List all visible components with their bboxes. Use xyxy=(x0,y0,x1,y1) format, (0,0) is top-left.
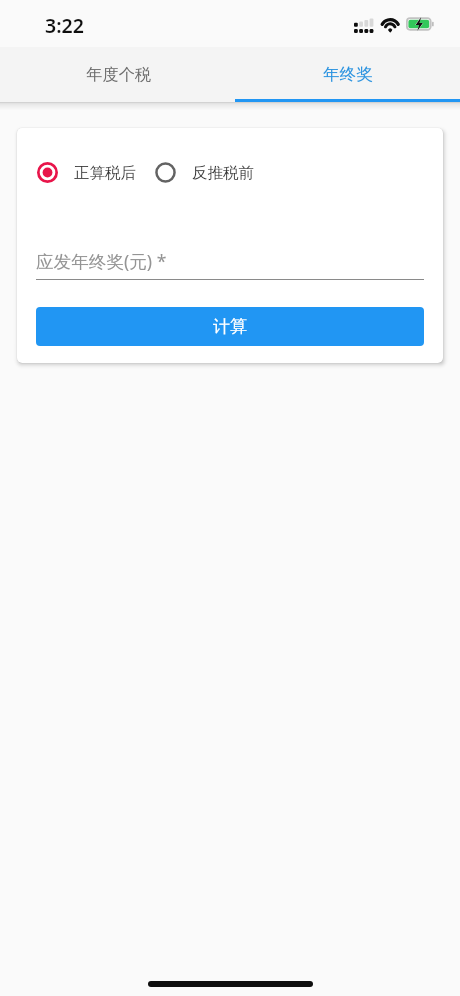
staticText: 3:22 xyxy=(45,12,84,39)
staticText: 计算 xyxy=(213,316,247,337)
button[interactable]: 反推税前 xyxy=(155,162,254,183)
staticText: 应发年终奖(元) * xyxy=(36,249,167,273)
staticText: 年度个税 xyxy=(86,64,152,85)
button[interactable]: 正算税后 xyxy=(37,162,136,183)
staticText: 反推税前 xyxy=(192,163,254,183)
button[interactable]: 计算 xyxy=(36,307,424,346)
staticText: 年终奖 xyxy=(323,64,373,85)
button[interactable]: 年终奖 xyxy=(230,47,460,102)
button[interactable]: 年度个税 xyxy=(0,47,230,102)
staticText: 正算税后 xyxy=(74,163,136,183)
